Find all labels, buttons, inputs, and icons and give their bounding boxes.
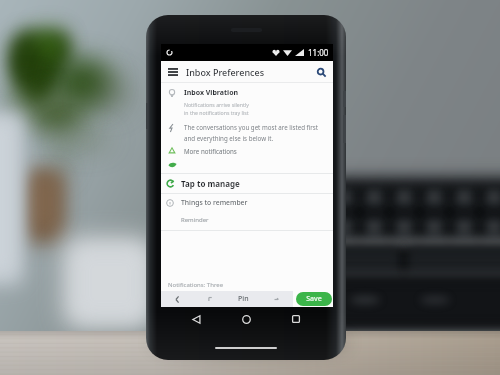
button[interactable]: Tap to manage (161, 178, 333, 189)
button[interactable]: Back (188, 311, 204, 327)
staticText: Inbox Preferences (186, 66, 265, 78)
button[interactable]: Home (238, 311, 254, 327)
button[interactable]: More notifications (161, 147, 333, 155)
button[interactable]: Open navigation drawer (166, 64, 180, 80)
staticText: Tap to manage (181, 178, 240, 189)
staticText: Notifications: Three (168, 281, 224, 289)
staticText: More notifications (184, 147, 237, 155)
button[interactable]: Previous (161, 291, 194, 307)
staticText: The conversations you get most are liste… (184, 123, 319, 131)
button[interactable]: Pin (227, 291, 260, 307)
button[interactable]: Inbox Vibration (161, 88, 333, 116)
button[interactable]: Archive (194, 291, 227, 307)
staticText: Inbox Vibration (184, 88, 239, 98)
button[interactable]: Save (296, 292, 332, 306)
button[interactable]: Next (260, 291, 293, 307)
button[interactable]: Search (314, 65, 328, 79)
staticText: Pin (238, 294, 249, 304)
staticText: Reminder (181, 216, 209, 224)
staticText: and everything else is below it. (184, 134, 274, 142)
staticText: in the notifications tray list (184, 109, 249, 116)
staticText: 11:00 (308, 47, 329, 58)
button[interactable]: The conversations you get most are liste… (161, 123, 333, 142)
staticText: Save (306, 294, 322, 304)
staticText: Notifications arrive silently (184, 101, 249, 108)
button[interactable]: Recent apps (288, 311, 304, 327)
staticText: Things to remember (181, 198, 248, 207)
button[interactable]: Things to remember (161, 198, 333, 207)
